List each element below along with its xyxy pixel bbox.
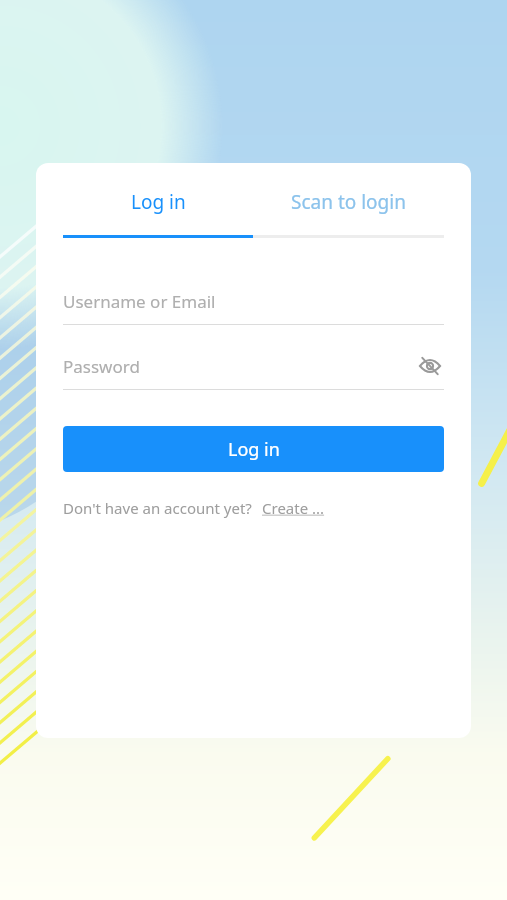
staticText: Password	[63, 355, 416, 378]
staticText: Scan to login	[291, 189, 406, 215]
staticText: Log in	[131, 189, 186, 215]
staticText: Create ...	[262, 498, 325, 518]
button[interactable]: Create ...	[262, 498, 325, 518]
staticText: Username or Email	[63, 290, 444, 313]
button[interactable]: Show password	[416, 352, 444, 380]
staticText: Don't have an account yet?	[63, 498, 252, 518]
button[interactable]: Log in	[63, 426, 444, 472]
button[interactable]: Log in	[63, 189, 253, 215]
button[interactable]: Username or Email	[63, 278, 444, 325]
button[interactable]: Password	[63, 343, 444, 390]
staticText: Log in	[228, 437, 280, 462]
button[interactable]: Scan to login	[253, 189, 444, 215]
